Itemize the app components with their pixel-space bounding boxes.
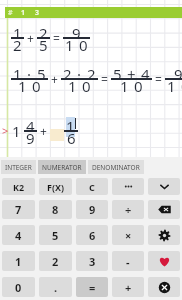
button[interactable]: 2 — [39, 251, 72, 271]
staticText: 1 — [65, 35, 74, 55]
staticText: 2 — [87, 64, 96, 84]
button[interactable]: 5 — [39, 225, 72, 245]
staticText: K2 — [13, 181, 25, 193]
staticText: = — [101, 71, 108, 87]
staticText: NUMERATOR — [42, 163, 82, 172]
staticText: 2 — [13, 35, 22, 55]
staticText: 8 — [52, 202, 59, 217]
staticText: × — [125, 228, 132, 243]
button[interactable]: Backspace — [148, 200, 180, 219]
staticText: 0 — [32, 76, 41, 96]
button[interactable]: INTEGER — [1, 160, 36, 174]
staticText: C — [89, 181, 95, 193]
button[interactable]: 8 — [39, 200, 72, 219]
staticText: 5 — [37, 64, 46, 84]
staticText: 4 — [15, 228, 22, 243]
button[interactable]: 0 — [2, 277, 35, 297]
button[interactable]: C — [76, 178, 108, 195]
staticText: 5 — [52, 228, 59, 243]
staticText: 0 — [79, 35, 88, 55]
button[interactable]: + — [112, 277, 144, 297]
staticText: 1 — [21, 8, 26, 18]
staticText: + — [40, 123, 47, 139]
staticText: 3 — [35, 8, 40, 18]
button[interactable]: ÷ — [112, 200, 144, 219]
button[interactable]: . — [39, 277, 72, 297]
staticText: · — [77, 64, 82, 84]
staticText: 1 — [18, 76, 27, 96]
button[interactable]: - — [112, 251, 144, 271]
button[interactable]: Settings — [148, 225, 180, 245]
button[interactable]: = — [76, 277, 108, 297]
button[interactable]: More — [112, 178, 144, 195]
staticText: 1 — [12, 121, 21, 141]
staticText: 2 — [52, 254, 59, 269]
button[interactable]: F(X) — [39, 178, 72, 195]
staticText: DENOMINATOR — [92, 163, 140, 172]
staticText: 1 — [120, 76, 129, 96]
staticText: 1 — [167, 76, 176, 96]
staticText: 5 — [39, 35, 48, 55]
staticText: 2 — [39, 23, 48, 43]
staticText: = — [89, 280, 96, 295]
staticText: + — [125, 280, 132, 295]
staticText: + — [51, 71, 58, 87]
staticText: 1 — [66, 116, 75, 136]
button[interactable]: DENOMINATOR — [88, 160, 144, 174]
staticText: 9 — [174, 64, 182, 84]
staticText: 3 — [89, 254, 96, 269]
staticText: + — [127, 64, 136, 84]
staticText: 0 — [82, 76, 91, 96]
staticText: 9 — [89, 202, 96, 217]
button[interactable]: 1 — [2, 251, 35, 271]
staticText: 0 — [181, 76, 182, 96]
staticText: 1 — [13, 64, 22, 84]
staticText: = — [53, 30, 60, 46]
staticText: 2 — [63, 64, 72, 84]
staticText: · — [27, 64, 32, 84]
button[interactable]: 6 — [76, 225, 108, 245]
staticText: 4 — [26, 116, 35, 136]
staticText: 6 — [67, 128, 76, 148]
staticText: ÷ — [125, 202, 132, 217]
staticText: 6 — [89, 228, 96, 243]
staticText: > — [2, 123, 9, 138]
button[interactable]: 3 — [76, 251, 108, 271]
staticText: 9 — [72, 23, 81, 43]
staticText: 0 — [134, 76, 143, 96]
staticText: 0 — [15, 280, 22, 295]
staticText: + — [27, 30, 34, 46]
button[interactable]: NUMERATOR — [38, 160, 86, 174]
button[interactable]: Favorite — [148, 251, 180, 271]
staticText: - — [126, 254, 130, 269]
staticText: 4 — [141, 64, 150, 84]
button[interactable]: 4 — [2, 225, 35, 245]
staticText: 1 — [68, 76, 77, 96]
staticText: 1 — [13, 23, 22, 43]
staticText: 9 — [26, 128, 35, 148]
button[interactable]: 9 — [76, 200, 108, 219]
staticText: INTEGER — [5, 163, 32, 172]
staticText: F(X) — [47, 181, 65, 193]
staticText: = — [155, 71, 162, 87]
staticText: 5 — [113, 64, 122, 84]
button[interactable]: × — [112, 225, 144, 245]
button[interactable]: Collapse keyboard — [148, 178, 180, 195]
button[interactable]: Clear all — [148, 277, 180, 297]
button[interactable]: 7 — [2, 200, 35, 219]
button[interactable]: K2 — [2, 178, 35, 195]
staticText: # — [8, 8, 13, 18]
staticText: . — [54, 280, 58, 295]
staticText: 7 — [15, 202, 22, 217]
staticText: 1 — [15, 254, 22, 269]
